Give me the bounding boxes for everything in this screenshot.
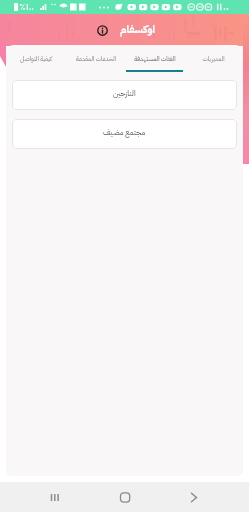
- staticText: الخدمات المقدمة: [76, 54, 116, 63]
- button[interactable]: Home: [83, 482, 166, 512]
- button[interactable]: كيفية التواصل: [6, 45, 66, 72]
- button[interactable]: الفئات المستهدفة: [125, 45, 184, 72]
- button[interactable]: الخدمات المقدمة: [66, 45, 125, 72]
- button[interactable]: Information: [93, 21, 112, 40]
- staticText: كيفية التواصل: [20, 54, 52, 63]
- staticText: مجتمع مضيف: [103, 127, 146, 139]
- button[interactable]: النازحين: [12, 80, 237, 110]
- staticText: الفئات المستهدفة: [134, 54, 176, 63]
- button[interactable]: مجتمع مضيف: [12, 119, 237, 149]
- button[interactable]: المديريات: [184, 45, 243, 72]
- staticText: المديريات: [202, 54, 225, 63]
- staticText: اوكسفام: [120, 22, 156, 38]
- staticText: النازحين: [113, 88, 136, 100]
- button[interactable]: Back: [166, 482, 249, 512]
- button[interactable]: Recent apps: [0, 482, 83, 512]
